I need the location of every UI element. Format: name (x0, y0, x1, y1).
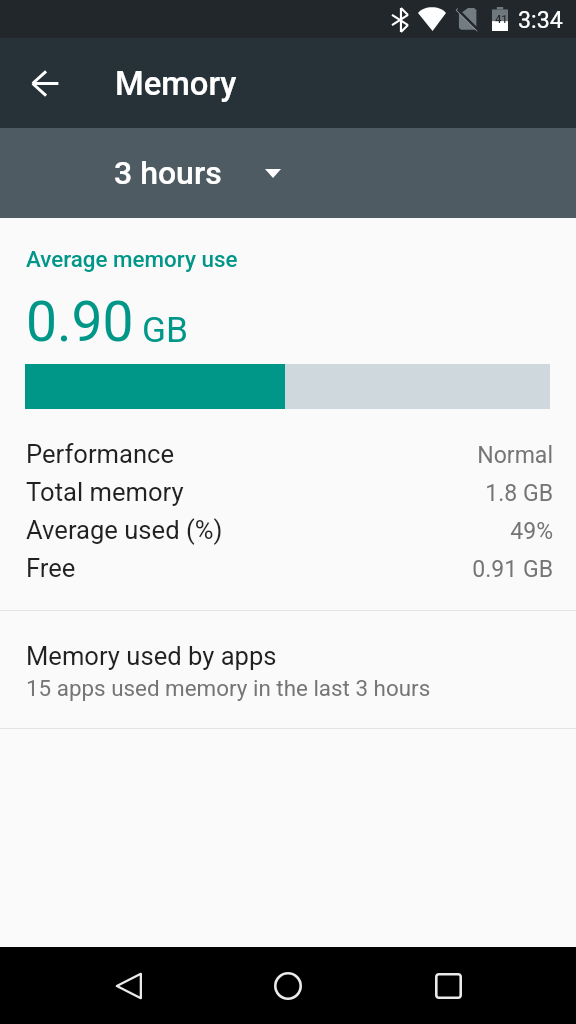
staticText: Memory (115, 65, 237, 103)
staticText: Free (26, 553, 76, 583)
staticText: 15 apps used memory in the last 3 hours (26, 675, 431, 701)
staticText: Performance (26, 439, 175, 469)
staticText: 1.8 GB (0, 480, 553, 507)
button[interactable]: Memory used by apps (0, 612, 576, 729)
staticText: Average used (%) (26, 515, 223, 545)
staticText: Total memory (26, 477, 184, 507)
staticText: 49% (0, 518, 553, 545)
staticText: Normal (0, 442, 553, 469)
button[interactable]: Navigate up (0, 38, 90, 128)
button[interactable]: Recent apps (368, 947, 528, 1024)
button[interactable]: Back (48, 947, 208, 1024)
staticText: 0.91 GB (0, 556, 553, 583)
button[interactable]: 3 hours (114, 154, 281, 192)
staticText: Memory used by apps (26, 641, 277, 671)
staticText: 41 (495, 13, 508, 26)
staticText: GB (142, 309, 188, 350)
staticText: 0.90 (26, 290, 134, 355)
staticText: 3 hours (114, 154, 222, 192)
staticText: 3:34 (518, 6, 563, 33)
staticText: Average memory use (26, 246, 238, 272)
button[interactable]: Home (208, 947, 368, 1024)
